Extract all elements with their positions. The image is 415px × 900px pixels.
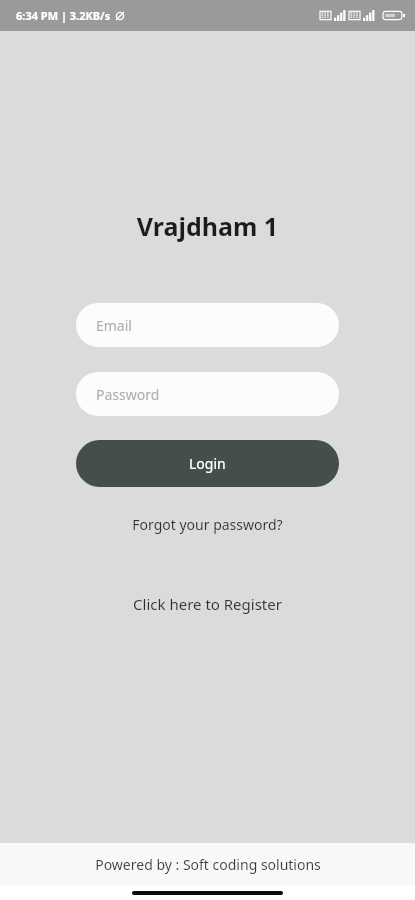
staticText: Powered by : Soft coding solutions bbox=[95, 855, 321, 874]
staticText: Click here to Register bbox=[133, 594, 282, 614]
button[interactable]: Forgot your password? bbox=[0, 509, 415, 540]
staticText: 6:34 PM | 3.2KB/s bbox=[16, 8, 111, 23]
staticText: Vrajdham 1 bbox=[0, 209, 415, 243]
staticText: Forgot your password? bbox=[132, 515, 283, 534]
staticText: Login bbox=[189, 454, 226, 473]
staticText: Email bbox=[96, 316, 132, 335]
button[interactable]: Email bbox=[76, 303, 339, 347]
button[interactable]: Click here to Register bbox=[0, 588, 415, 620]
button[interactable]: Password bbox=[76, 372, 339, 416]
button[interactable]: Login bbox=[76, 440, 339, 487]
staticText: Password bbox=[96, 385, 160, 404]
